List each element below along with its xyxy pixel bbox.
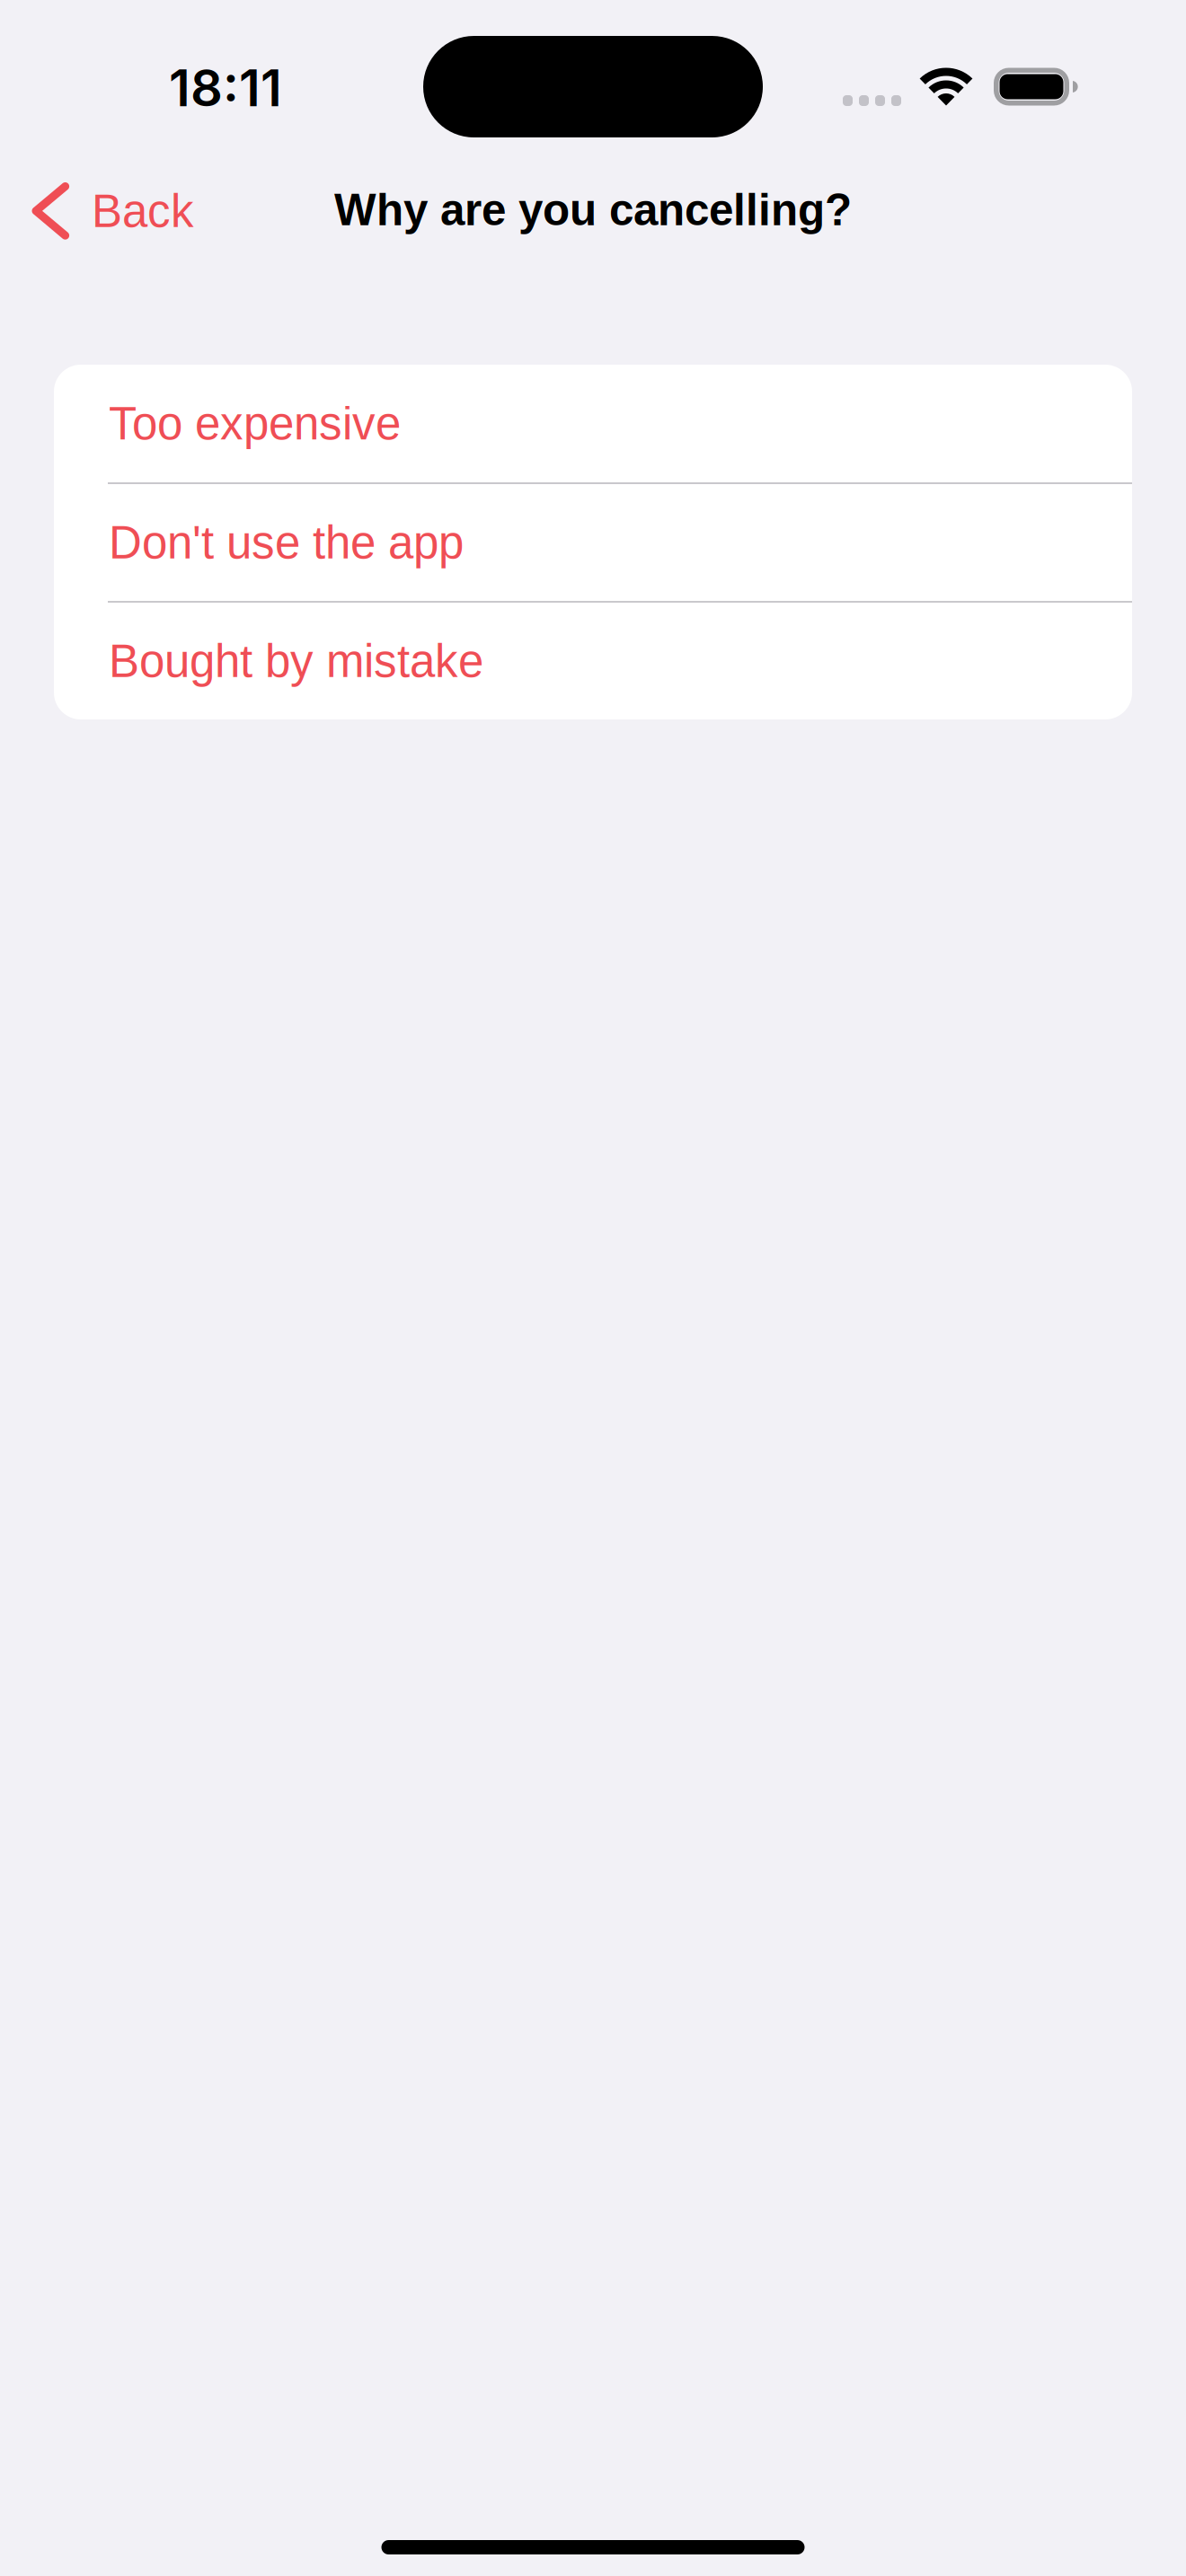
staticText: Why are you cancelling?	[334, 185, 852, 235]
staticText: Back	[92, 185, 194, 237]
staticText: Bought by mistake	[109, 635, 483, 687]
staticText: Don't use the app	[109, 517, 464, 568]
staticText: Too expensive	[109, 398, 401, 449]
button[interactable]: Don't use the app	[54, 484, 1132, 603]
button[interactable]: Too expensive	[54, 365, 1132, 484]
button[interactable]: Back	[0, 159, 216, 263]
button[interactable]: Bought by mistake	[54, 603, 1132, 719]
staticText: 18:11	[169, 57, 282, 118]
